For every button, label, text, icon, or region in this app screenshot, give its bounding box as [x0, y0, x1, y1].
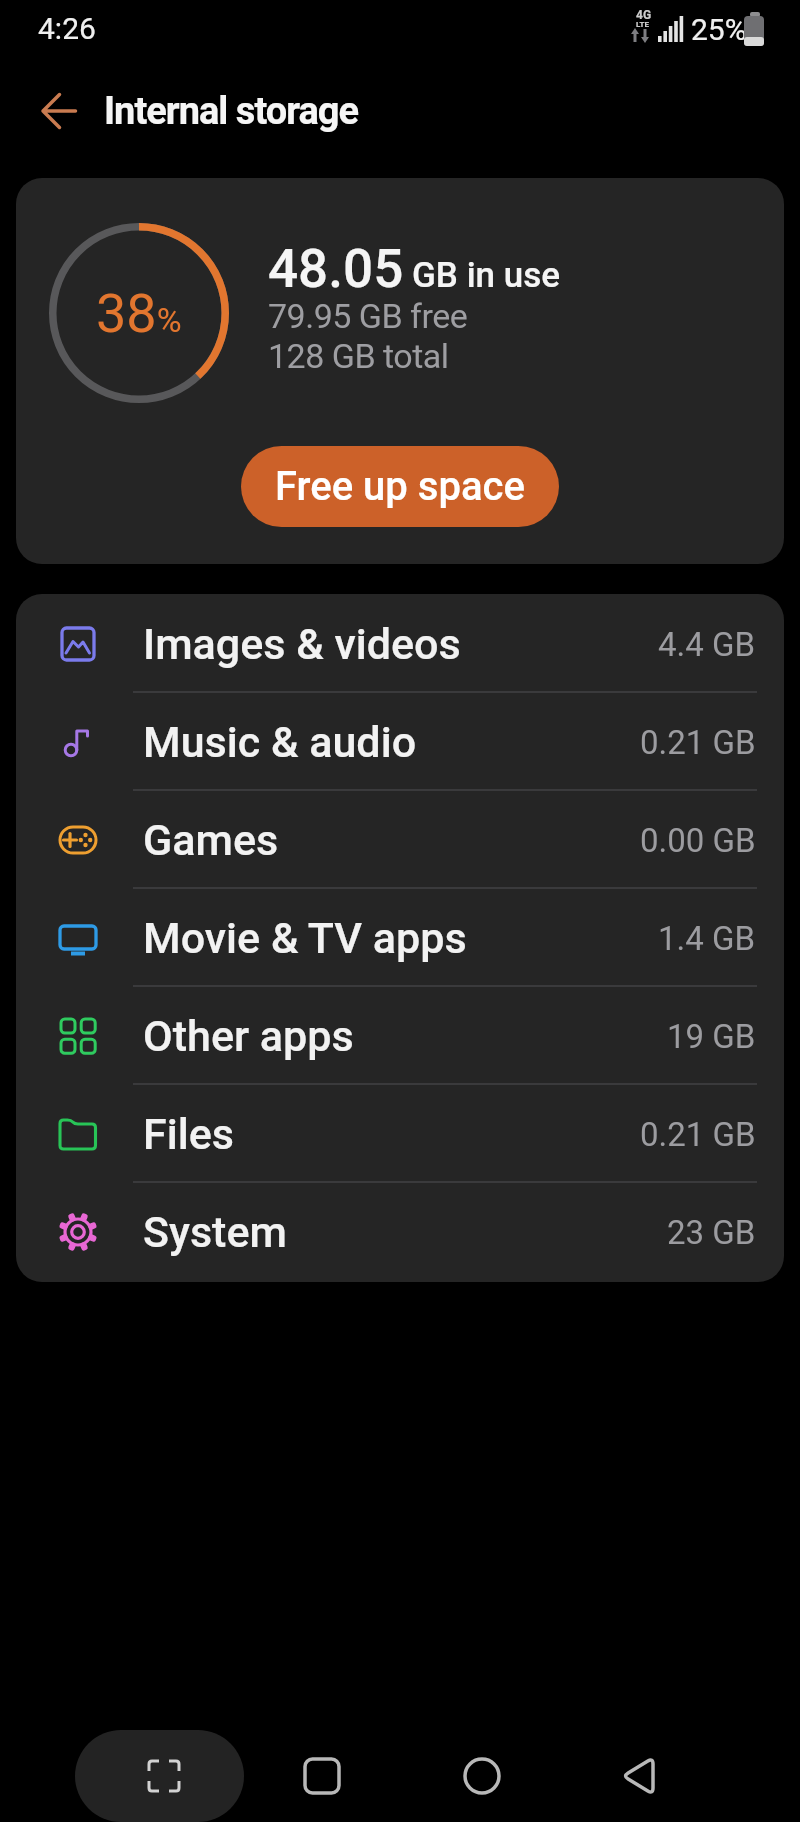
button[interactable]: System [16, 1183, 784, 1281]
staticText: 1.4 GB [658, 919, 756, 958]
staticText: 48.05 GB in use [268, 238, 561, 300]
button[interactable]: Free up space [241, 446, 559, 527]
button[interactable]: Movie & TV apps [16, 889, 784, 987]
staticText: 4G [636, 8, 652, 22]
button[interactable]: Music & audio [16, 693, 784, 791]
button[interactable]: Files [16, 1085, 784, 1183]
staticText: 38% [96, 282, 182, 345]
staticText: 19 GB [667, 1017, 756, 1056]
staticText: 4:26 [38, 11, 96, 46]
staticText: 4.4 GB [658, 625, 756, 664]
button[interactable] [455, 1749, 509, 1803]
button[interactable]: Images & videos [16, 595, 784, 693]
button[interactable] [28, 88, 90, 134]
staticText: 25% [691, 12, 747, 47]
staticText: 0.00 GB [640, 821, 756, 860]
staticText: 0.21 GB [640, 723, 756, 762]
staticText: Music & audio [143, 717, 417, 767]
staticText: Free up space [275, 463, 526, 510]
button[interactable]: Games [16, 791, 784, 889]
staticText: 0.21 GB [640, 1115, 756, 1154]
staticText: LTE [636, 20, 649, 29]
staticText: Internal storage [104, 89, 359, 134]
staticText: Files [143, 1109, 234, 1159]
staticText: 23 GB [667, 1213, 756, 1252]
staticText: Other apps [143, 1011, 354, 1061]
staticText: System [143, 1207, 287, 1257]
button[interactable] [612, 1751, 668, 1801]
staticText: 128 GB total [268, 336, 449, 376]
staticText: Movie & TV apps [143, 913, 467, 963]
staticText: Images & videos [143, 619, 461, 669]
button[interactable] [295, 1749, 349, 1803]
button[interactable]: Other apps [16, 987, 784, 1085]
staticText: 79.95 GB free [268, 296, 468, 336]
staticText: Games [143, 815, 279, 865]
button[interactable] [75, 1730, 244, 1822]
